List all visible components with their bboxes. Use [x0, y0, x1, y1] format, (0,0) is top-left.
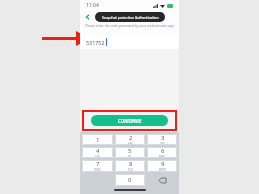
- staticText: MNO: [159, 155, 166, 158]
- staticText: 1: [96, 136, 100, 144]
- staticText: Snapchat protection Authentication: [102, 15, 159, 20]
- button[interactable]: 2: [115, 134, 145, 145]
- button[interactable]: Back: [83, 12, 93, 22]
- staticText: 4: [96, 147, 100, 155]
- staticText: DEF: [160, 142, 165, 145]
- button[interactable]: Backspace: [147, 174, 177, 186]
- staticText: 6: [161, 147, 165, 155]
- button[interactable]: 1: [82, 134, 113, 145]
- staticText: GHI: [95, 155, 100, 158]
- staticText: 2: [129, 134, 133, 142]
- staticText: 8: [129, 160, 133, 168]
- button[interactable]: 8: [115, 160, 145, 172]
- staticText: ABC: [128, 142, 133, 145]
- button[interactable]: Snapchat protection Authentication: [95, 12, 165, 22]
- button[interactable]: CONTINUE: [91, 115, 168, 126]
- staticText: 11:04: [86, 2, 99, 9]
- button[interactable]: 4: [82, 147, 113, 158]
- staticText: 9: [161, 160, 165, 168]
- staticText: PQRS: [94, 168, 101, 172]
- staticText: 0: [128, 176, 132, 184]
- button[interactable]: 0: [115, 174, 145, 186]
- button[interactable]: 5: [115, 147, 145, 158]
- staticText: CONTINUE: [118, 118, 142, 124]
- staticText: WXYZ: [159, 168, 166, 172]
- staticText: JKL: [128, 155, 132, 158]
- button[interactable]: 9: [147, 160, 177, 172]
- staticText: Please enter the code generated by your …: [80, 24, 179, 28]
- staticText: 531752: [86, 39, 105, 46]
- staticText: TUV: [128, 168, 133, 172]
- button[interactable]: 3: [147, 134, 177, 145]
- staticText: 7: [96, 160, 100, 168]
- staticText: 3: [161, 134, 165, 142]
- button[interactable]: 7: [82, 160, 113, 172]
- staticText: 5: [128, 147, 132, 155]
- button[interactable]: 6: [147, 147, 177, 158]
